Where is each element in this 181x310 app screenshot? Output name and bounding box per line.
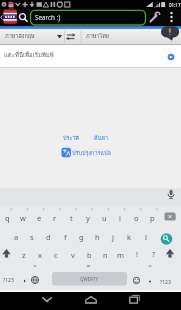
staticText: Search :) bbox=[35, 13, 61, 22]
staticText: t bbox=[70, 213, 73, 223]
button[interactable]: ประวัติ bbox=[58, 132, 85, 145]
button[interactable] bbox=[64, 29, 81, 45]
staticText: m bbox=[117, 250, 125, 260]
button[interactable]: ปรับปรุงการแปล bbox=[72, 147, 127, 159]
button[interactable]: w bbox=[16, 210, 30, 226]
button[interactable]: r bbox=[48, 210, 62, 226]
button[interactable]: a bbox=[9, 229, 23, 245]
button[interactable]: n bbox=[98, 247, 112, 263]
staticText: e bbox=[37, 213, 42, 223]
button[interactable]: ค้นหา bbox=[90, 132, 112, 145]
staticText: f bbox=[64, 232, 67, 242]
button[interactable] bbox=[158, 230, 176, 248]
button[interactable]: p bbox=[145, 210, 159, 226]
button[interactable]: h bbox=[90, 229, 104, 245]
button[interactable]: q bbox=[0, 210, 14, 226]
button[interactable]: 01:17 bbox=[167, 0, 181, 9]
button[interactable]: แตะที่นี่เพื่อเริ่มพิมพ์ bbox=[4, 47, 104, 62]
button[interactable] bbox=[30, 10, 146, 25]
staticText: j bbox=[112, 232, 114, 242]
button[interactable]: v bbox=[66, 247, 80, 263]
staticText: p bbox=[150, 213, 155, 223]
button[interactable] bbox=[163, 246, 180, 262]
button[interactable] bbox=[28, 272, 43, 287]
staticText: 01:17 bbox=[169, 2, 181, 8]
staticText: b bbox=[87, 250, 92, 260]
button[interactable]: ภาษาไทย bbox=[86, 30, 128, 43]
staticText: ? bbox=[152, 250, 156, 260]
staticText: w bbox=[20, 213, 26, 223]
staticText: ประวัติ bbox=[63, 134, 80, 143]
button[interactable] bbox=[163, 186, 179, 203]
button[interactable] bbox=[162, 209, 179, 224]
button[interactable]: QWERTY bbox=[69, 272, 109, 286]
button[interactable]: Search :) bbox=[35, 11, 81, 24]
staticText: g bbox=[79, 232, 84, 242]
staticText: ?123 bbox=[3, 277, 14, 284]
staticText: l bbox=[145, 232, 147, 242]
button[interactable] bbox=[0, 29, 64, 45]
staticText: z bbox=[22, 250, 26, 260]
button[interactable] bbox=[147, 10, 164, 26]
button[interactable] bbox=[143, 272, 157, 287]
staticText: v bbox=[71, 250, 75, 260]
staticText: k bbox=[127, 232, 132, 242]
button[interactable]: b bbox=[82, 247, 96, 263]
staticText: x bbox=[38, 250, 42, 260]
staticText: s bbox=[30, 232, 34, 242]
staticText: n bbox=[103, 250, 108, 260]
button[interactable] bbox=[165, 10, 179, 26]
button[interactable]: l bbox=[139, 229, 153, 245]
button[interactable] bbox=[18, 11, 30, 24]
button[interactable]: ภาษาอังกฤษ bbox=[5, 30, 55, 43]
button[interactable] bbox=[38, 293, 56, 309]
button[interactable] bbox=[81, 29, 155, 45]
button[interactable] bbox=[18, 272, 32, 287]
staticText: ภาษาอังกฤษ bbox=[5, 32, 35, 41]
button[interactable] bbox=[52, 272, 127, 286]
staticText: a bbox=[14, 232, 19, 242]
button[interactable]: s bbox=[25, 229, 39, 245]
button[interactable]: c bbox=[49, 247, 63, 263]
staticText: q bbox=[5, 213, 10, 223]
staticText: h bbox=[95, 232, 100, 242]
button[interactable]: j bbox=[106, 229, 120, 245]
button[interactable] bbox=[129, 272, 144, 287]
button[interactable]: x bbox=[33, 247, 47, 263]
button[interactable]: e bbox=[32, 210, 46, 226]
button[interactable]: ?123 bbox=[156, 275, 174, 289]
button[interactable]: k bbox=[122, 229, 136, 245]
button[interactable]: m bbox=[114, 247, 128, 263]
staticText: i bbox=[119, 213, 121, 223]
staticText: d bbox=[46, 232, 51, 242]
staticText: o bbox=[134, 213, 139, 223]
button[interactable]: u bbox=[97, 210, 111, 226]
staticText: ค้นหา bbox=[94, 134, 109, 143]
button[interactable] bbox=[82, 293, 100, 309]
button[interactable]: z bbox=[17, 247, 31, 263]
button[interactable]: i bbox=[113, 210, 127, 226]
staticText: r bbox=[53, 213, 57, 223]
button[interactable] bbox=[0, 45, 181, 67]
button[interactable] bbox=[125, 293, 143, 309]
staticText: ! bbox=[136, 250, 138, 260]
staticText: QWERTY bbox=[80, 276, 99, 282]
button[interactable]: t bbox=[64, 210, 78, 226]
staticText: ปรับปรุงการแปล bbox=[72, 149, 111, 158]
button[interactable]: f bbox=[58, 229, 72, 245]
button[interactable]: d bbox=[41, 229, 55, 245]
staticText: y bbox=[86, 213, 90, 223]
button[interactable]: ! bbox=[130, 247, 144, 263]
button[interactable]: ?123 bbox=[0, 273, 17, 287]
button[interactable]: o bbox=[129, 210, 143, 226]
button[interactable] bbox=[2, 9, 18, 26]
button[interactable]: g bbox=[74, 229, 88, 245]
button[interactable]: ? bbox=[147, 247, 161, 263]
button[interactable] bbox=[164, 50, 178, 64]
button[interactable] bbox=[161, 26, 180, 41]
button[interactable] bbox=[0, 246, 14, 262]
staticText: ?123 bbox=[160, 279, 171, 286]
staticText: ภาษาไทย bbox=[86, 32, 110, 41]
staticText: แตะที่นี่เพื่อเริ่มพิมพ์ bbox=[4, 50, 54, 60]
button[interactable]: y bbox=[81, 210, 95, 226]
